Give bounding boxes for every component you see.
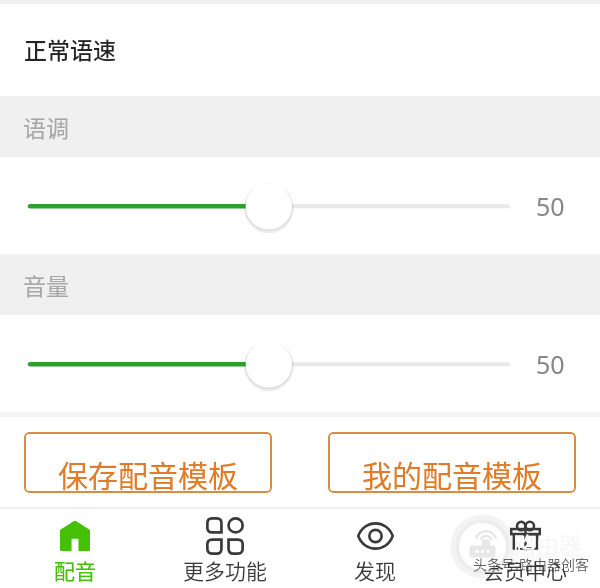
staticText: 语调	[23, 110, 69, 143]
other: 更多功能	[206, 517, 244, 555]
staticText: 50	[536, 189, 565, 223]
other: 会员中心	[510, 521, 541, 551]
button[interactable]: 更多功能	[150, 509, 300, 588]
staticText: 会员中心	[483, 555, 567, 585]
staticText: 更多功能	[183, 555, 267, 585]
staticText: 音量	[23, 268, 69, 301]
staticText: luyouqi.com	[513, 550, 577, 565]
staticText: 保存配音模板	[58, 452, 238, 493]
button[interactable]: 配音	[0, 509, 150, 588]
other: 发现	[357, 522, 394, 550]
button[interactable]: 会员中心	[450, 509, 600, 588]
staticText: 配音	[54, 555, 96, 585]
button[interactable]: 保存配音模板	[24, 432, 272, 493]
button[interactable]: Slider	[0, 157, 600, 254]
staticText: 我的配音模板	[362, 452, 542, 493]
staticText: 发现	[354, 555, 396, 585]
staticText: 50	[536, 347, 565, 381]
staticText: 头条号:路由器创客	[473, 554, 589, 574]
staticText: 路由器	[513, 527, 582, 560]
button[interactable]: 我的配音模板	[328, 432, 576, 493]
other: 配音	[60, 521, 90, 551]
button[interactable]: 发现	[300, 509, 450, 588]
button[interactable]: Slider	[0, 315, 600, 412]
staticText: 正常语速	[24, 32, 116, 65]
